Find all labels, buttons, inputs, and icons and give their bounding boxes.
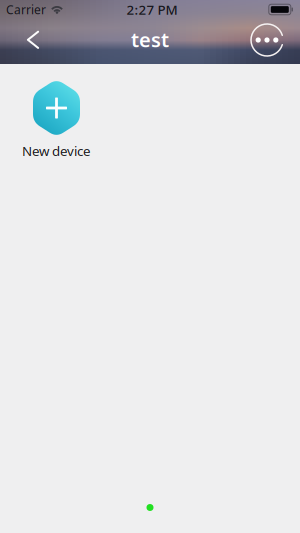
staticText: Carrier xyxy=(6,1,46,17)
button[interactable]: New device xyxy=(8,79,105,160)
staticText: test xyxy=(131,26,169,53)
button[interactable]: Back xyxy=(11,18,55,62)
staticText: 2:27 PM xyxy=(126,1,177,18)
staticText: New device xyxy=(22,142,91,160)
button[interactable]: More options xyxy=(245,18,289,62)
